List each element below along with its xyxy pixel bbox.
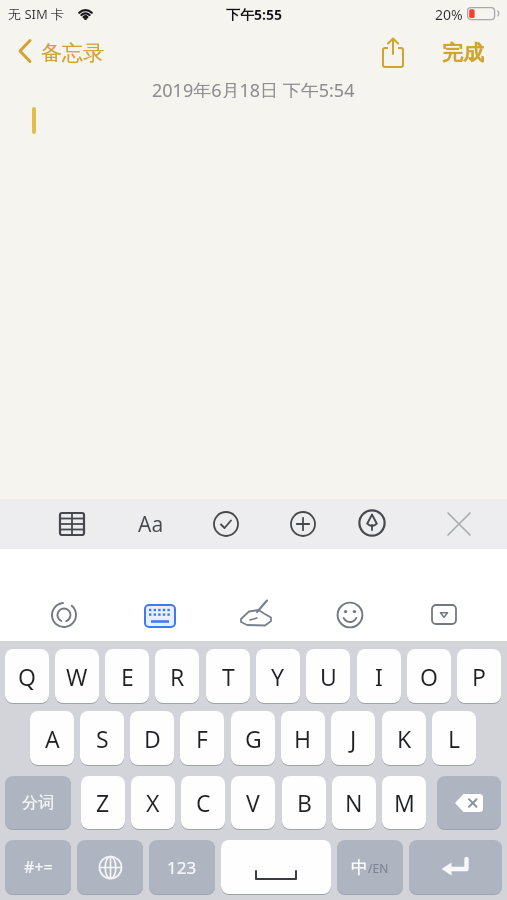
button[interactable] [446, 511, 472, 537]
button[interactable]: U [306, 649, 350, 703]
button[interactable]: R [155, 649, 199, 703]
staticText: A [45, 723, 60, 754]
staticText: L [448, 723, 461, 754]
button[interactable]: 分词 [5, 776, 71, 829]
staticText: /EN [368, 860, 389, 876]
button[interactable]: 完成 [408, 40, 484, 64]
staticText: H [294, 723, 312, 754]
button[interactable]: J [331, 711, 375, 765]
staticText: T [222, 661, 235, 692]
button[interactable] [334, 599, 366, 631]
staticText: P [472, 661, 486, 692]
staticText: Y [271, 661, 285, 692]
button[interactable] [409, 840, 502, 894]
staticText: M [394, 787, 415, 818]
button[interactable]: I [357, 649, 401, 703]
button[interactable] [77, 840, 143, 894]
staticText: J [350, 723, 357, 754]
staticText: N [345, 787, 363, 818]
staticText: 分词 [22, 793, 54, 813]
button[interactable]: B [282, 776, 326, 829]
staticText: U [320, 661, 337, 692]
button[interactable] [57, 510, 87, 538]
staticText: 123 [167, 856, 197, 879]
staticText: #+= [24, 856, 53, 878]
button[interactable]: X [131, 776, 175, 829]
button[interactable]: P [457, 649, 501, 703]
staticText: F [196, 723, 208, 754]
button[interactable]: S [80, 711, 124, 765]
button[interactable] [289, 510, 317, 538]
staticText: Z [96, 787, 110, 818]
button[interactable]: H [281, 711, 325, 765]
button[interactable]: F [180, 711, 224, 765]
button[interactable]: T [206, 649, 250, 703]
staticText: W [66, 661, 88, 692]
staticText: S [96, 723, 109, 754]
staticText: 完成 [442, 40, 484, 64]
button[interactable]: Q [5, 649, 49, 703]
button[interactable] [221, 840, 331, 894]
button[interactable] [378, 36, 410, 70]
staticText: 中 [351, 857, 368, 878]
staticText: O [420, 661, 438, 692]
button[interactable]: K [382, 711, 426, 765]
staticText: E [121, 661, 134, 692]
staticText: Aa [138, 510, 164, 539]
button[interactable]: L [432, 711, 476, 765]
button[interactable]: #+= [5, 840, 71, 894]
staticText: B [297, 787, 312, 818]
staticText: R [170, 661, 185, 692]
staticText: 2019年6月18日 下午5:54 [152, 78, 355, 98]
staticText: V [246, 787, 260, 818]
button[interactable] [48, 599, 80, 631]
button[interactable]: 备忘录 [16, 38, 126, 64]
button[interactable] [437, 776, 501, 829]
button[interactable]: M [382, 776, 426, 829]
staticText: G [245, 723, 262, 754]
button[interactable]: 中 [337, 840, 403, 894]
button[interactable] [142, 602, 178, 630]
button[interactable]: V [231, 776, 275, 829]
button[interactable]: 123 [149, 840, 215, 894]
staticText: K [397, 723, 412, 754]
button[interactable]: D [130, 711, 174, 765]
button[interactable]: C [181, 776, 225, 829]
staticText: C [196, 787, 211, 818]
button[interactable]: O [407, 649, 451, 703]
staticText: 下午5:55 [226, 5, 282, 21]
staticText: 无 SIM 卡 [8, 5, 65, 21]
staticText: 备忘录 [41, 40, 104, 64]
button[interactable] [429, 602, 459, 628]
button[interactable]: G [231, 711, 275, 765]
button[interactable] [236, 596, 276, 632]
staticText: 20% [435, 5, 463, 21]
button[interactable] [212, 510, 240, 538]
staticText: D [144, 723, 161, 754]
button[interactable]: Z [81, 776, 125, 829]
button[interactable] [358, 509, 386, 537]
staticText: X [146, 787, 160, 818]
staticText: I [375, 661, 383, 692]
button[interactable]: Aa [132, 502, 170, 546]
button[interactable]: A [30, 711, 74, 765]
button[interactable]: N [332, 776, 376, 829]
button[interactable]: W [55, 649, 99, 703]
button[interactable]: E [105, 649, 149, 703]
button[interactable]: Y [256, 649, 300, 703]
staticText: Q [18, 661, 36, 692]
